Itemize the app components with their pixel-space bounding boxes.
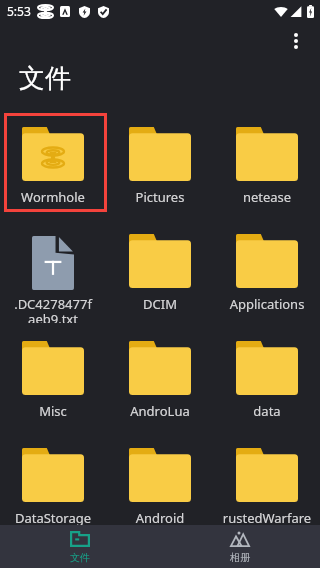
button[interactable]: More options	[274, 19, 318, 63]
staticText: 5:53	[7, 3, 31, 19]
button[interactable]: Applications	[213, 216, 320, 323]
staticText: AndroLua	[109, 402, 211, 420]
staticText: Wormhole	[2, 188, 104, 206]
staticText: Pictures	[109, 188, 211, 206]
staticText: Applications	[216, 295, 318, 313]
button[interactable]: 相册	[160, 525, 320, 568]
button[interactable]: .DC4278477faeb9.txt	[0, 216, 106, 323]
button[interactable]: Wormhole	[0, 109, 106, 216]
staticText: data	[216, 402, 318, 420]
staticText: DCIM	[109, 295, 211, 313]
staticText: Misc	[2, 402, 104, 420]
button[interactable]: 文件	[0, 525, 160, 568]
staticText: 文件	[70, 551, 90, 564]
button[interactable]: rustedWarfare	[213, 430, 320, 525]
staticText: DataStorage	[2, 509, 104, 525]
staticText: Android	[109, 509, 211, 525]
button[interactable]: DataStorage	[0, 430, 106, 525]
staticText: .DC4278477faeb9.txt	[11, 295, 95, 323]
staticText: rustedWarfare	[216, 509, 318, 525]
staticText: netease	[216, 188, 318, 206]
button[interactable]: netease	[213, 109, 320, 216]
staticText: 相册	[230, 551, 250, 564]
button[interactable]: DCIM	[106, 216, 213, 323]
staticText: 文件	[19, 62, 71, 95]
button[interactable]: data	[213, 323, 320, 430]
button[interactable]: Android	[106, 430, 213, 525]
button[interactable]: Pictures	[106, 109, 213, 216]
button[interactable]: Misc	[0, 323, 106, 430]
button[interactable]: AndroLua	[106, 323, 213, 430]
